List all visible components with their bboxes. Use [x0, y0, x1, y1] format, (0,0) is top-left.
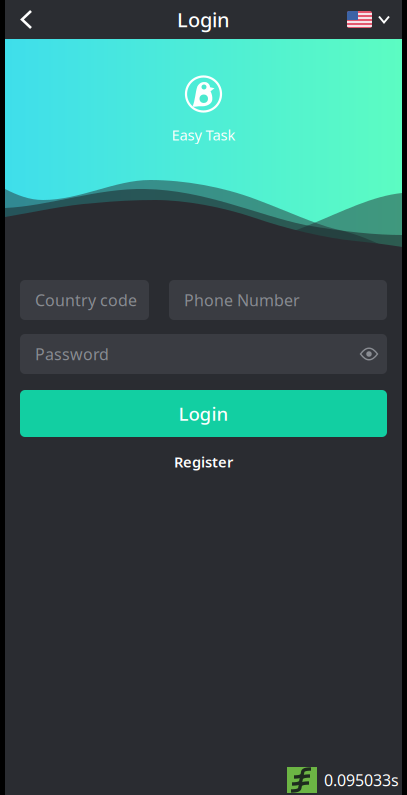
staticText: 0.095033s	[324, 769, 399, 791]
staticText: Password	[35, 343, 109, 365]
staticText: Phone Number	[184, 289, 300, 311]
staticText: Login	[178, 401, 228, 426]
staticText: Register	[174, 452, 233, 471]
button[interactable]: Login	[20, 390, 387, 437]
button[interactable]: Register	[152, 446, 255, 477]
staticText: Login	[177, 6, 230, 33]
staticText: Country code	[35, 289, 137, 311]
button[interactable]: Show password	[351, 334, 387, 374]
button[interactable]: Select language	[333, 0, 402, 39]
button[interactable]: Back	[5, 0, 45, 39]
staticText: Easy Task	[171, 125, 235, 144]
